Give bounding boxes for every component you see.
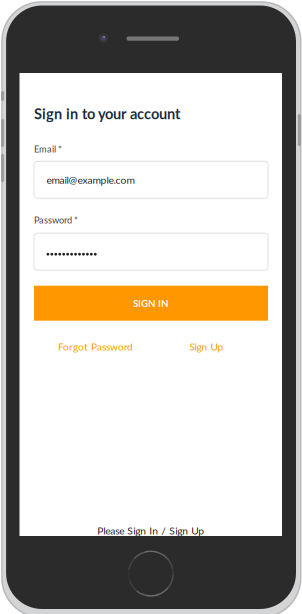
staticText: SIGN IN (133, 297, 169, 309)
staticText: Email * (34, 143, 62, 154)
button[interactable]: Forgot Password (45, 338, 145, 356)
staticText: Forgot Password (58, 340, 133, 353)
staticText: Please Sign In / Sign Up (97, 524, 204, 537)
button[interactable]: Sign Up (175, 338, 239, 356)
staticText: Sign in to your account (34, 105, 180, 122)
staticText: Password * (34, 214, 78, 225)
button[interactable]: Please Sign In / Sign Up (19, 522, 282, 540)
staticText: email@example.com (46, 174, 134, 186)
staticText: Sign Up (190, 340, 224, 353)
button[interactable]: SIGN IN (34, 286, 268, 321)
